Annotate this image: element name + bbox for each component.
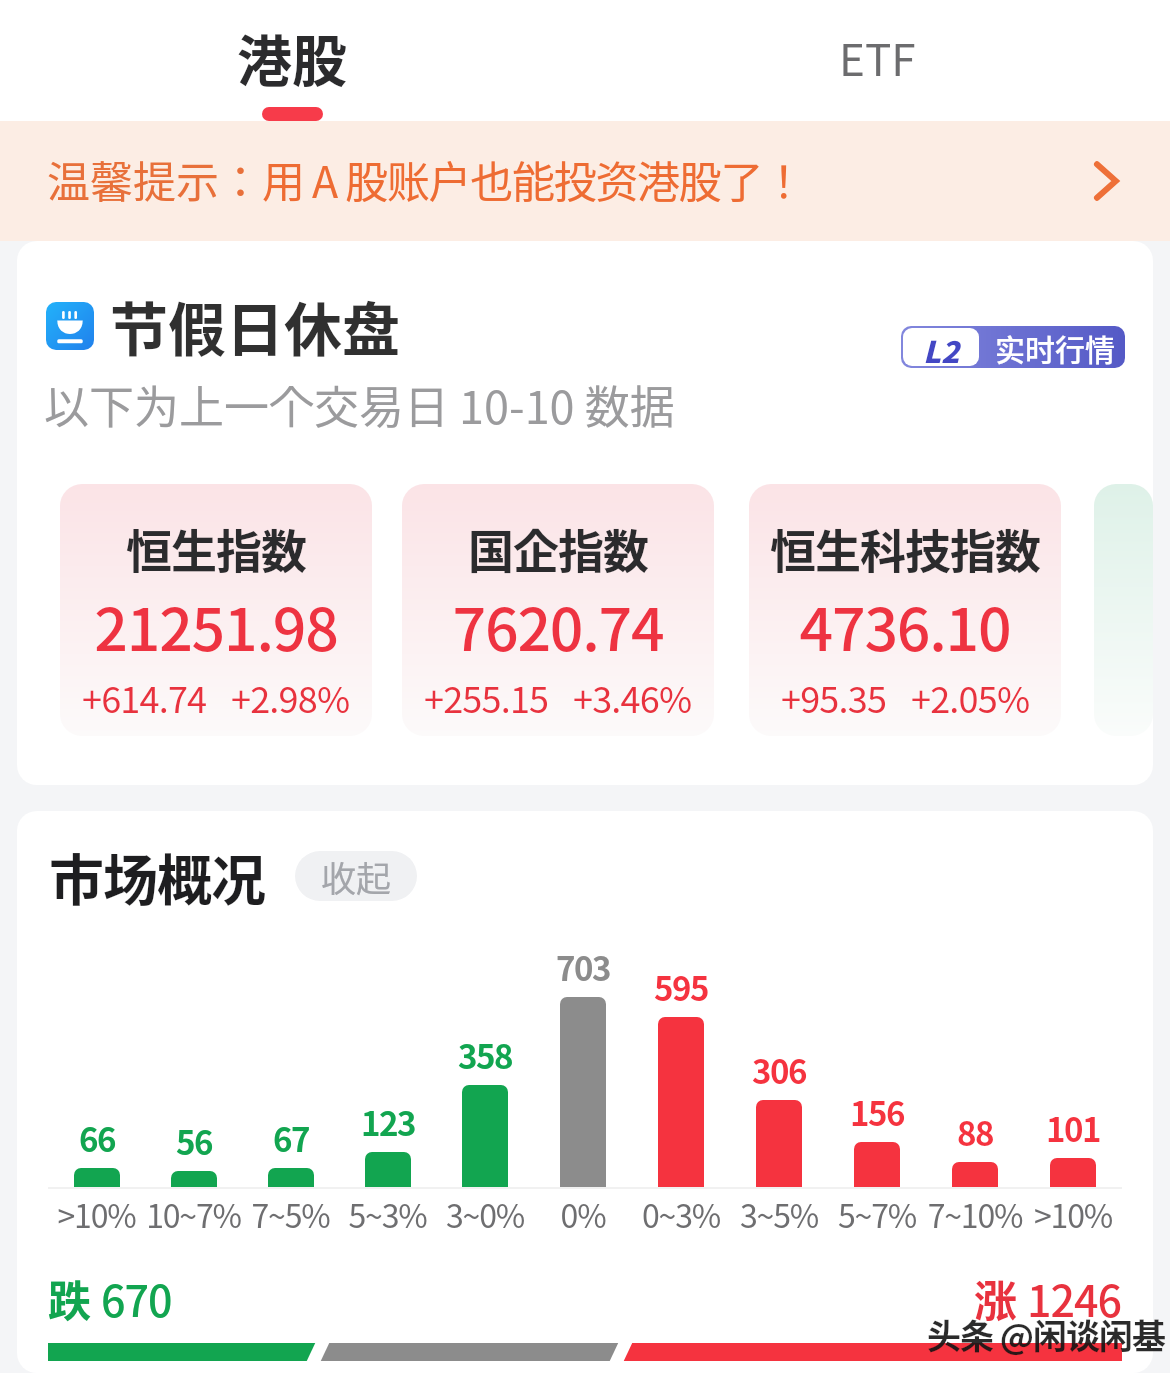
staticText: 670 bbox=[101, 1267, 172, 1329]
staticText: 3~0% bbox=[436, 1191, 534, 1237]
staticText: 头条 @闲谈闲基 bbox=[927, 1310, 1165, 1359]
button[interactable] bbox=[1094, 484, 1153, 736]
staticText: 7620.74 bbox=[402, 583, 714, 668]
other: 查看详情 bbox=[1083, 161, 1123, 201]
staticText: 156 bbox=[850, 1088, 904, 1136]
staticText: ETF bbox=[839, 25, 916, 89]
staticText: 0~3% bbox=[632, 1191, 730, 1237]
staticText: +2.05% bbox=[911, 671, 1030, 723]
staticText: 1246 bbox=[1027, 1267, 1122, 1329]
staticText: 恒生指数 bbox=[60, 515, 372, 582]
staticText: 595 bbox=[654, 963, 708, 1011]
staticText: +255.15 bbox=[424, 671, 549, 723]
staticText: +2.98% bbox=[231, 671, 350, 723]
staticText: 10~7% bbox=[145, 1191, 242, 1237]
staticText: 0% bbox=[534, 1191, 632, 1237]
staticText: 4736.10 bbox=[749, 583, 1061, 668]
staticText: +614.74 bbox=[82, 671, 207, 723]
staticText: 5~7% bbox=[828, 1191, 926, 1237]
staticText: 306 bbox=[752, 1046, 806, 1094]
staticText: 66 bbox=[79, 1114, 115, 1162]
button[interactable]: 温馨提示： bbox=[0, 121, 1170, 241]
staticText: 跌 bbox=[48, 1267, 91, 1329]
staticText: >10% bbox=[1024, 1191, 1122, 1237]
staticText: 恒生科技指数 bbox=[749, 515, 1061, 582]
staticText: +95.35 bbox=[781, 671, 887, 723]
staticText: 88 bbox=[957, 1108, 993, 1156]
staticText: 以下为上一个交易日 10-10 数据 bbox=[44, 372, 675, 437]
staticText: 123 bbox=[361, 1098, 415, 1146]
staticText: 3~5% bbox=[730, 1191, 828, 1237]
button[interactable]: ETF bbox=[585, 0, 1170, 121]
staticText: 21251.98 bbox=[60, 583, 372, 668]
staticText: 5~3% bbox=[339, 1191, 436, 1237]
staticText: 涨 bbox=[974, 1267, 1017, 1329]
button[interactable]: L2 bbox=[901, 326, 1125, 368]
staticText: +3.46% bbox=[573, 671, 692, 723]
button[interactable]: 国企指数 bbox=[402, 484, 714, 736]
staticText: 56 bbox=[176, 1117, 212, 1165]
staticText: 7~10% bbox=[926, 1191, 1024, 1237]
button[interactable]: 港股 bbox=[0, 0, 585, 121]
button[interactable]: 恒生指数 bbox=[60, 484, 372, 736]
staticText: 实时行情 bbox=[995, 326, 1115, 368]
staticText: 67 bbox=[273, 1114, 309, 1162]
staticText: 7~5% bbox=[242, 1191, 339, 1237]
staticText: 港股 bbox=[237, 17, 348, 97]
button[interactable]: 收起 bbox=[295, 851, 417, 901]
staticText: 收起 bbox=[321, 851, 392, 901]
staticText: L2 bbox=[923, 328, 960, 366]
staticText: 358 bbox=[458, 1031, 512, 1079]
button[interactable]: 恒生科技指数 bbox=[749, 484, 1061, 736]
staticText: 101 bbox=[1046, 1104, 1100, 1152]
staticText: >10% bbox=[48, 1191, 145, 1237]
staticText: 用 A 股账户也能投资港股了！ bbox=[262, 148, 804, 210]
staticText: 703 bbox=[556, 943, 610, 991]
staticText: 国企指数 bbox=[402, 515, 714, 582]
staticText: 温馨提示： bbox=[47, 148, 262, 210]
staticText: 市场概况 bbox=[49, 836, 266, 916]
staticText: 节假日休盘 bbox=[110, 284, 401, 368]
